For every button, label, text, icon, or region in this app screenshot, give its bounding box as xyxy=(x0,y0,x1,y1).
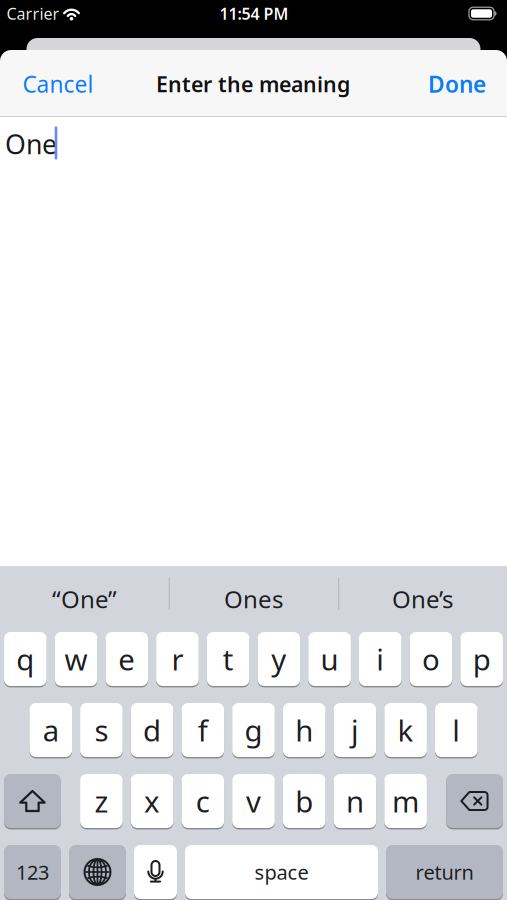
staticText: s xyxy=(94,710,108,749)
staticText: x xyxy=(144,781,160,820)
staticText: w xyxy=(64,639,87,678)
staticText: g xyxy=(244,710,262,749)
button[interactable]: i xyxy=(359,631,402,687)
staticText: One xyxy=(5,126,57,162)
staticText: 123 xyxy=(16,859,49,885)
button[interactable]: Return xyxy=(386,844,503,900)
staticText: u xyxy=(321,639,339,678)
button[interactable]: q xyxy=(4,631,47,687)
staticText: a xyxy=(43,710,59,749)
staticText: o xyxy=(422,639,440,678)
button[interactable]: o xyxy=(410,631,452,687)
staticText: f xyxy=(198,710,208,749)
button[interactable]: Done xyxy=(407,61,507,107)
button[interactable]: x xyxy=(131,773,173,829)
button[interactable]: One’s xyxy=(338,568,506,630)
button[interactable]: n xyxy=(334,773,376,829)
button[interactable]: c xyxy=(181,773,224,829)
button[interactable]: j xyxy=(334,702,376,758)
staticText: Enter the meaning xyxy=(156,70,350,98)
staticText: n xyxy=(346,781,364,820)
button[interactable]: Shift xyxy=(4,773,61,829)
button[interactable]: z xyxy=(80,773,123,829)
button[interactable]: t xyxy=(207,631,249,687)
staticText: j xyxy=(351,710,359,749)
staticText: t xyxy=(223,639,234,678)
button[interactable]: k xyxy=(384,702,427,758)
staticText: c xyxy=(196,781,210,820)
staticText: k xyxy=(398,710,414,749)
button[interactable]: f xyxy=(181,702,224,758)
button[interactable]: y xyxy=(258,631,300,687)
button[interactable]: s xyxy=(80,702,123,758)
staticText: z xyxy=(94,781,108,820)
staticText: return xyxy=(415,859,473,885)
staticText: y xyxy=(271,639,286,678)
button[interactable]: a xyxy=(29,702,72,758)
button[interactable]: e xyxy=(105,631,148,687)
button[interactable]: Ones xyxy=(169,568,337,630)
staticText: 11:54 PM xyxy=(219,3,288,24)
button[interactable]: Delete xyxy=(446,773,503,829)
button[interactable]: v xyxy=(232,773,275,829)
button[interactable]: b xyxy=(283,773,325,829)
button[interactable]: m xyxy=(384,773,427,829)
staticText: l xyxy=(452,710,460,749)
button[interactable]: p xyxy=(460,631,503,687)
button[interactable]: l xyxy=(435,702,478,758)
staticText: m xyxy=(392,781,419,820)
staticText: d xyxy=(143,710,161,749)
staticText: e xyxy=(118,639,135,678)
staticText: i xyxy=(376,639,384,678)
staticText: p xyxy=(473,639,491,678)
staticText: b xyxy=(295,781,313,820)
button[interactable]: g xyxy=(232,702,275,758)
button[interactable]: d xyxy=(131,702,173,758)
button[interactable]: Numbers xyxy=(4,844,61,900)
staticText: One’s xyxy=(392,583,453,615)
staticText: Done xyxy=(428,69,486,99)
staticText: Carrier xyxy=(6,3,59,24)
button[interactable]: “One” xyxy=(0,568,168,630)
button[interactable]: r xyxy=(156,631,199,687)
staticText: v xyxy=(246,781,261,820)
button[interactable]: Cancel xyxy=(0,61,118,107)
staticText: q xyxy=(16,639,34,678)
staticText: Ones xyxy=(224,583,283,615)
button[interactable]: Next keyboard xyxy=(69,844,126,900)
staticText: Cancel xyxy=(22,69,93,99)
button[interactable]: Dictate xyxy=(134,844,177,900)
staticText: “One” xyxy=(52,583,117,615)
staticText: space xyxy=(254,859,308,885)
button[interactable]: h xyxy=(283,702,325,758)
button[interactable]: w xyxy=(55,631,97,687)
button[interactable]: Space xyxy=(185,844,378,900)
staticText: h xyxy=(295,710,313,749)
staticText: r xyxy=(171,639,183,678)
button[interactable]: u xyxy=(308,631,351,687)
